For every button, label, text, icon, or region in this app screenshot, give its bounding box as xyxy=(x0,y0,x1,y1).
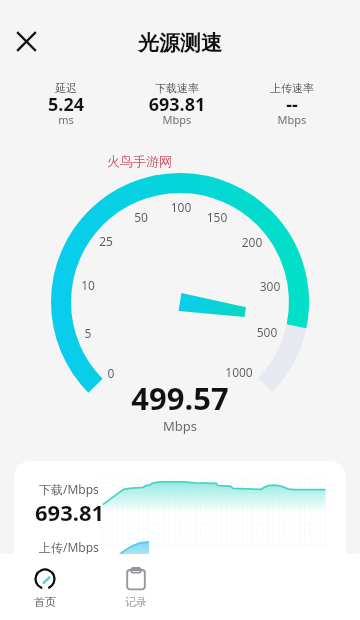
staticText: 5 xyxy=(66,325,110,341)
staticText: 延迟 xyxy=(6,81,126,95)
staticText: Mbps xyxy=(232,112,352,127)
button[interactable]: 记录 xyxy=(106,559,166,611)
staticText: -- xyxy=(232,92,352,117)
staticText: 693.81 xyxy=(117,92,237,117)
button[interactable]: 首页 xyxy=(15,559,75,611)
staticText: 火鸟手游网 xyxy=(107,153,172,169)
staticText: 光源测速 xyxy=(0,30,360,56)
staticText: 500 xyxy=(245,324,289,340)
staticText: 下载速率 xyxy=(117,81,237,95)
staticText: 0 xyxy=(89,365,133,381)
staticText: 200 xyxy=(230,234,274,250)
staticText: Mbps xyxy=(0,417,360,435)
button[interactable]: Close xyxy=(10,25,42,57)
staticText: 下载/Mbps xyxy=(39,481,99,497)
staticText: 693.81 xyxy=(35,497,105,527)
staticText: 300 xyxy=(248,278,292,294)
staticText: 100 xyxy=(159,199,203,215)
staticText: 上传/Mbps xyxy=(39,539,99,555)
staticText: ms xyxy=(6,112,126,127)
staticText: 150 xyxy=(195,209,239,225)
staticText: 10 xyxy=(66,277,110,293)
staticText: 25 xyxy=(84,233,128,249)
staticText: 50 xyxy=(119,209,163,225)
staticText: 首页 xyxy=(15,595,75,609)
staticText: 5.24 xyxy=(6,92,126,117)
staticText: 1000 xyxy=(217,364,261,380)
staticText: 记录 xyxy=(106,595,166,609)
staticText: 上传速率 xyxy=(232,81,352,95)
staticText: 499.57 xyxy=(0,377,360,419)
staticText: Mbps xyxy=(117,112,237,127)
